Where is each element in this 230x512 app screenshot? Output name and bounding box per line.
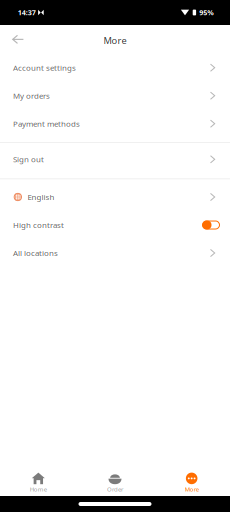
button[interactable]: Back: [0, 25, 23, 54]
button[interactable]: Account settings: [0, 54, 230, 82]
staticText: All locations: [13, 248, 58, 258]
button[interactable]: Sign out: [0, 145, 230, 173]
staticText: Sign out: [13, 154, 44, 165]
button[interactable]: English: [0, 183, 230, 211]
staticText: Order: [107, 485, 123, 493]
button[interactable]: All locations: [0, 239, 230, 267]
button[interactable]: Home: [0, 473, 77, 493]
button[interactable]: My orders: [0, 82, 230, 110]
staticText: High contrast: [13, 220, 64, 230]
button[interactable]: Payment methods: [0, 110, 230, 138]
staticText: Account settings: [13, 62, 76, 73]
staticText: Payment methods: [13, 118, 80, 129]
staticText: 95%: [199, 8, 213, 17]
button[interactable]: High contrast: [0, 211, 230, 239]
staticText: More: [185, 485, 199, 493]
staticText: More: [103, 34, 126, 47]
staticText: 14:37: [18, 8, 36, 17]
staticText: Home: [30, 485, 47, 493]
button[interactable]: Order: [77, 473, 153, 493]
staticText: English: [27, 192, 54, 202]
staticText: My orders: [13, 90, 50, 101]
button[interactable]: More: [153, 473, 230, 493]
